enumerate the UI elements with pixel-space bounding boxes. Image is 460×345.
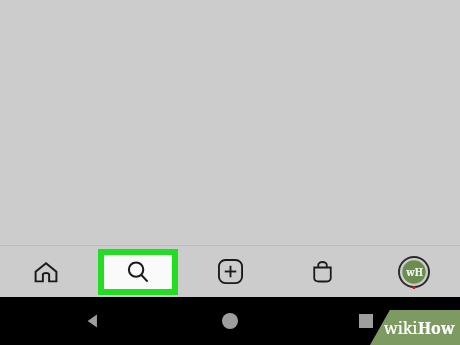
button[interactable]: Shop — [276, 246, 368, 297]
button[interactable]: Recent apps — [355, 310, 377, 332]
staticText: How — [418, 317, 455, 339]
button[interactable]: Profile — [368, 246, 460, 297]
button[interactable]: Search — [92, 246, 184, 297]
button[interactable]: Home — [0, 246, 92, 297]
staticText: wH — [406, 265, 423, 279]
button[interactable]: Home — [219, 310, 241, 332]
button[interactable]: Back — [82, 310, 104, 332]
button[interactable]: Create new post — [184, 246, 276, 297]
staticText: wiki — [384, 317, 418, 339]
